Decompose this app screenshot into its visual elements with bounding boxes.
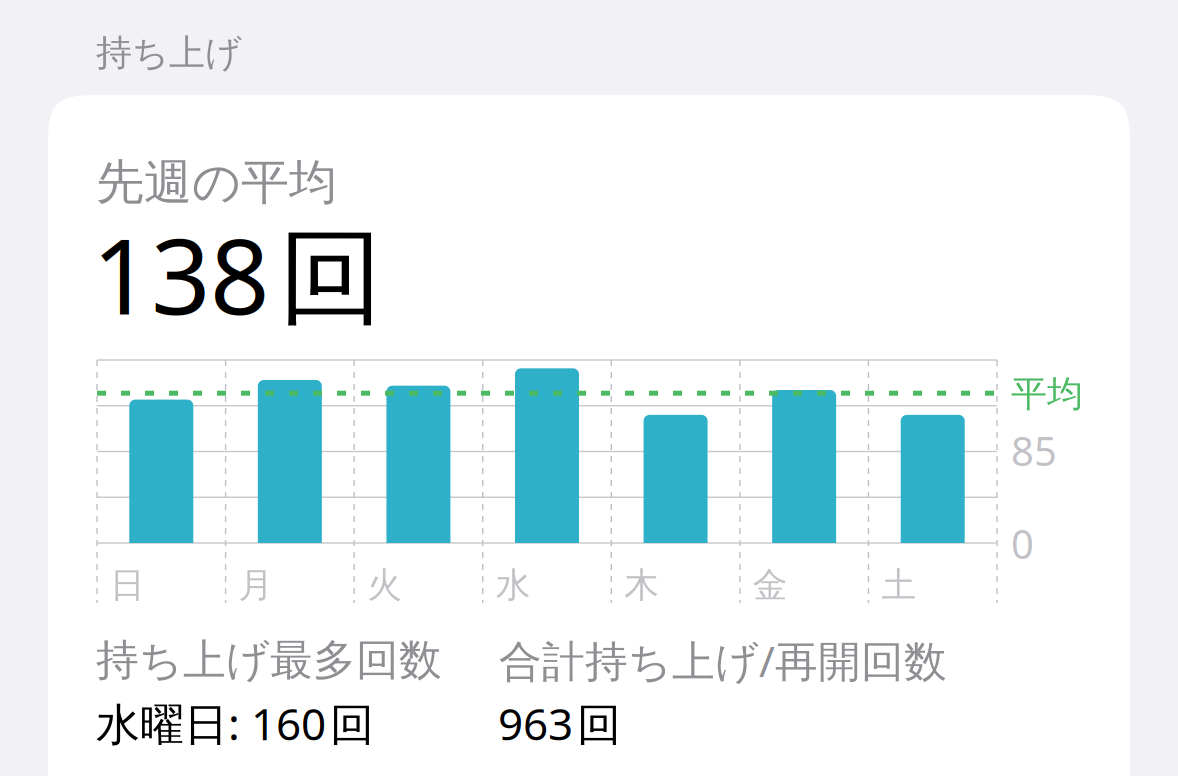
staticText: 持ち上げ最多回数: [96, 634, 442, 686]
staticText: 水: [496, 564, 531, 607]
staticText: 金: [753, 564, 788, 607]
button[interactable]: 持ち上げ 先週の平均 138回: [0, 0, 1178, 776]
staticText: 持ち上げ: [96, 31, 242, 75]
staticText: 平均: [1011, 372, 1083, 416]
staticText: 月: [239, 564, 274, 607]
staticText: 合計持ち上げ/再開回数: [499, 632, 947, 689]
staticText: 水曜日: 160 回: [96, 694, 374, 752]
staticText: 木: [624, 564, 659, 607]
staticText: 日: [110, 564, 145, 607]
staticText: 先週の平均: [96, 153, 337, 212]
staticText: 火: [367, 564, 402, 607]
staticText: 0: [1011, 517, 1034, 570]
staticText: 963 回: [498, 694, 621, 752]
staticText: 土: [881, 564, 916, 607]
staticText: 138 回: [92, 205, 383, 343]
staticText: 85: [1011, 424, 1057, 477]
